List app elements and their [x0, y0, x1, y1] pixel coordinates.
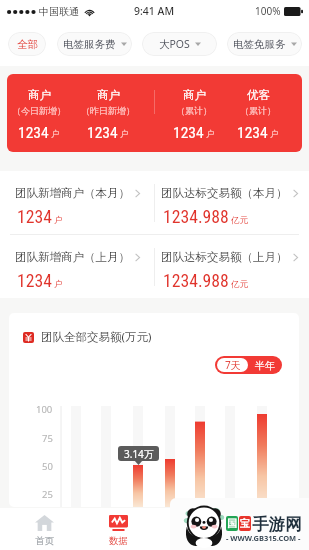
button[interactable]: 商户: [0, 74, 84, 152]
staticText: 75: [42, 432, 53, 445]
staticText: 手游网: [252, 514, 302, 535]
button[interactable]: 商户: [63, 74, 153, 152]
staticText: 团队新增商户（上月）: [15, 250, 130, 264]
staticText: 3.14万: [124, 447, 154, 461]
staticText: 电签免服务: [233, 38, 286, 51]
staticText: 团队新增商户（本月）: [15, 186, 130, 200]
staticText: 1234: [18, 124, 49, 142]
staticText: （累计）: [176, 105, 212, 116]
button[interactable]: 半年: [249, 358, 280, 372]
staticText: 1234: [87, 124, 118, 142]
staticText: 首页: [35, 535, 54, 547]
staticText: 半年: [255, 359, 275, 372]
button[interactable]: 团队全部交易额(万元): [23, 329, 152, 345]
staticText: （今日新增）: [12, 105, 66, 116]
staticText: 户: [54, 215, 63, 226]
staticText: 25: [42, 488, 53, 501]
button[interactable]: 优客: [213, 74, 303, 152]
staticText: 优客: [247, 88, 270, 102]
button[interactable]: 团队达标交易额（本月）: [146, 171, 301, 234]
staticText: 商户: [28, 88, 51, 102]
staticText: 电签服务费: [63, 38, 116, 51]
staticText: 亿元: [231, 279, 248, 290]
staticText: （累计）: [240, 105, 276, 116]
staticText: 1234.988: [163, 271, 229, 292]
staticText: 户: [270, 129, 279, 140]
button[interactable]: 商户: [149, 74, 239, 152]
staticText: 户: [120, 129, 129, 140]
staticText: 数据: [109, 535, 128, 547]
staticText: 商户: [183, 88, 206, 102]
staticText: 户: [54, 279, 63, 290]
button[interactable]: 数据: [81, 508, 155, 550]
staticText: 1234: [237, 124, 268, 142]
staticText: 1234: [17, 271, 52, 292]
staticText: 全部: [17, 38, 38, 51]
button[interactable]: 首页: [7, 508, 81, 550]
button[interactable]: 团队新增商户（本月）: [0, 171, 155, 234]
staticText: 商户: [97, 88, 120, 102]
staticText: 更多: [257, 535, 276, 547]
button[interactable]: 团队达标交易额（上月）: [146, 235, 301, 298]
staticText: - WWW.GB315.COM -: [226, 533, 301, 543]
staticText: 团队达标交易额（本月）: [161, 186, 288, 200]
button[interactable]: 电签服务费: [57, 32, 132, 56]
staticText: 50: [42, 460, 53, 473]
staticText: 100: [36, 403, 53, 416]
button[interactable]: 全部: [8, 32, 46, 56]
staticText: 1234: [17, 207, 52, 228]
staticText: 中国联通: [39, 5, 79, 18]
staticText: 团队达标交易额（上月）: [161, 250, 288, 264]
button[interactable]: 我的: [155, 508, 229, 550]
staticText: 我的: [183, 535, 202, 547]
staticText: 团队全部交易额(万元): [41, 329, 152, 345]
staticText: 国: [227, 517, 237, 530]
staticText: 户: [51, 129, 60, 140]
staticText: 7天: [225, 358, 241, 372]
staticText: 户: [206, 129, 215, 140]
button[interactable]: 团队新增商户（上月）: [0, 235, 155, 298]
staticText: （昨日新增）: [81, 105, 135, 116]
staticText: 1234: [173, 124, 204, 142]
staticText: 大POS: [159, 37, 190, 51]
button[interactable]: 大POS: [142, 32, 217, 56]
staticText: 1234.988: [163, 207, 229, 228]
button[interactable]: 电签免服务: [227, 32, 302, 56]
button[interactable]: 更多: [229, 508, 303, 550]
staticText: 宝: [240, 517, 250, 530]
staticText: 亿元: [231, 215, 248, 226]
button[interactable]: 7天: [217, 358, 248, 372]
staticText: 100%: [255, 4, 281, 18]
staticText: 9:41 AM: [134, 4, 175, 18]
